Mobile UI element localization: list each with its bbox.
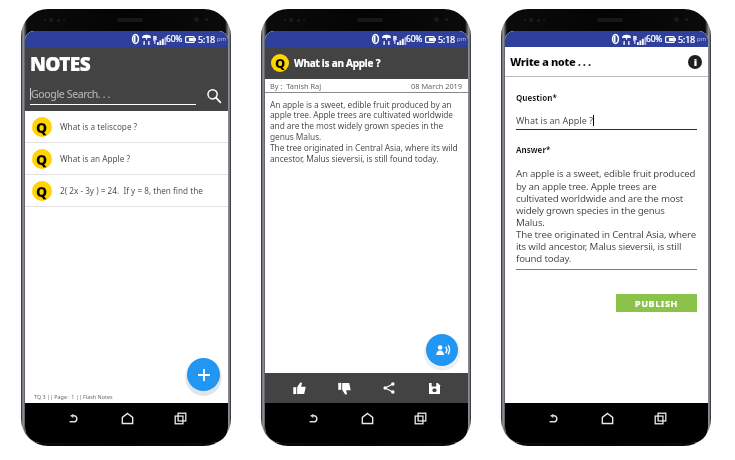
staticText: 1 [393,38,397,46]
staticText: Q [36,118,48,137]
button[interactable]: Add note [187,358,220,391]
staticText: What is a teliscope ? [60,121,138,132]
staticText: i [694,56,697,68]
button[interactable]: Back [540,405,566,431]
staticText: TQ 3 || Page : 1 || Flash Notes [34,393,113,400]
staticText: PUBLISH [635,297,678,309]
staticText: 60% [166,33,183,45]
button[interactable]: Q [25,143,228,175]
button[interactable]: Home [354,405,380,431]
button[interactable]: Save [423,377,445,399]
button[interactable]: Recent apps [647,405,673,431]
staticText: What is an Apple ? [60,153,131,164]
button[interactable]: Info [688,55,702,69]
button[interactable]: PUBLISH [616,294,697,312]
button[interactable]: Home [114,405,140,431]
staticText: 60% [406,33,423,45]
staticText: What is an Apple ? [516,114,593,126]
staticText: pm [217,35,227,43]
staticText: pm [457,35,467,43]
staticText: pm [697,35,707,43]
staticText: 5:18 [678,33,696,45]
staticText: 5:18 [438,33,456,45]
staticText: 2( 2x - 3y ) = 24. If y = 8, then find t… [60,185,203,196]
staticText: Write a note . . . [510,54,591,69]
staticText: Google Search. . . [31,87,111,101]
staticText: 5:18 [198,33,216,45]
button[interactable]: Q [25,111,228,143]
staticText: An apple is a sweet, edible fruit produc… [516,167,696,265]
button[interactable]: Recent apps [407,405,433,431]
staticText: R [153,34,157,42]
button[interactable]: Google Search. . . [30,87,223,105]
button[interactable]: Back [60,405,86,431]
staticText: Answer* [516,144,551,155]
button[interactable]: Like [288,377,310,399]
staticText: What is an Apple ? [294,56,381,70]
button[interactable]: Home [594,405,620,431]
other: Search [205,87,223,105]
staticText: 1 [633,38,637,46]
button[interactable]: Share [378,377,400,399]
staticText: NOTES [30,51,91,77]
button[interactable]: Recent apps [167,405,193,431]
button[interactable]: Back [300,405,326,431]
staticText: An apple is a sweet, edible fruit produc… [270,99,458,165]
staticText: R [633,34,637,42]
staticText: 08 March 2019 [411,81,463,91]
button[interactable]: Q [25,175,228,207]
staticText: 60% [646,33,663,45]
staticText: Q [36,150,48,169]
staticText: By : Tanish Raj [270,81,322,91]
staticText: Question* [516,92,557,103]
staticText: Q [36,182,48,201]
staticText: 1 [153,38,157,46]
staticText: R [393,34,397,42]
button[interactable]: Dislike [333,377,355,399]
button[interactable]: Read aloud [426,334,458,366]
staticText: Q [275,54,286,72]
